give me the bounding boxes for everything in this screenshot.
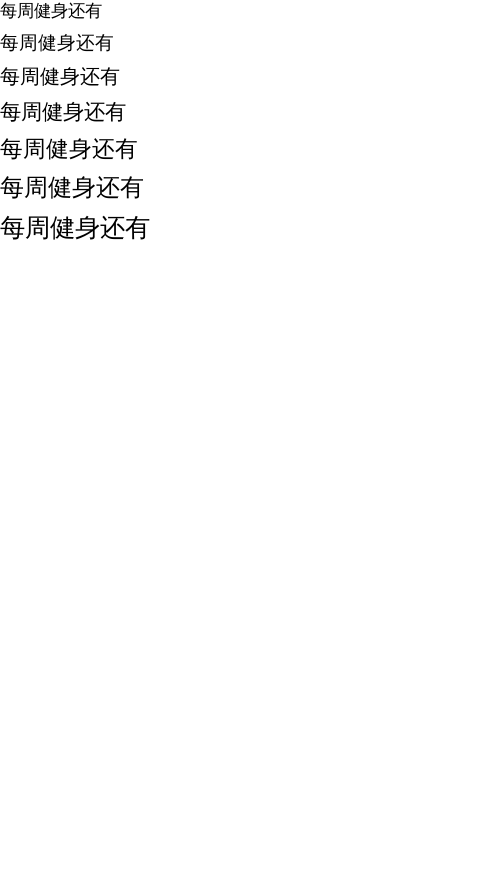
staticText: 每周健身还有: [0, 212, 150, 243]
staticText: 每周健身还有: [0, 99, 126, 125]
staticText: 每周健身还有: [0, 64, 120, 89]
staticText: 每周健身还有: [0, 135, 138, 163]
staticText: 每周健身还有: [0, 0, 102, 21]
staticText: 每周健身还有: [0, 173, 144, 202]
staticText: 每周健身还有: [0, 31, 114, 54]
